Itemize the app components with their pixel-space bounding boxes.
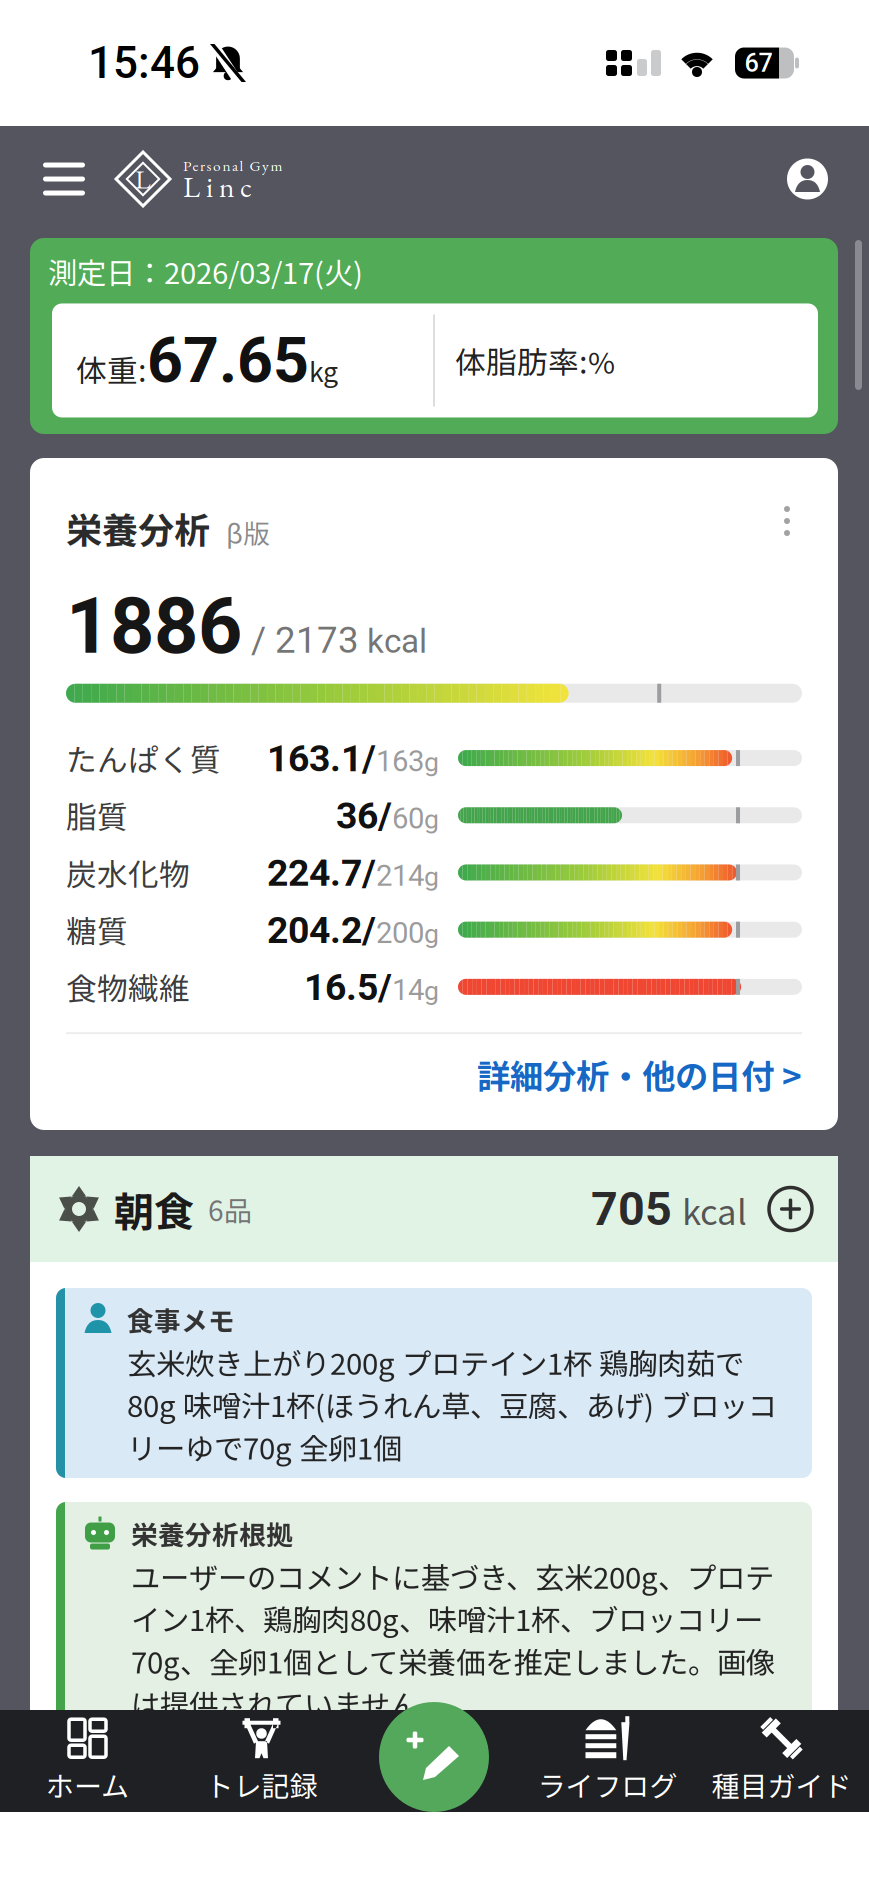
- staticText: 1886: [66, 581, 242, 672]
- staticText: 食物繊維: [66, 964, 190, 1009]
- staticText: トレ記録: [205, 1764, 317, 1805]
- staticText: L: [135, 162, 151, 196]
- staticText: %: [588, 340, 615, 382]
- button[interactable]: ホーム: [46, 1717, 129, 1805]
- button[interactable]: Menu: [42, 157, 86, 201]
- staticText: 6品: [208, 1189, 252, 1229]
- staticText: g: [424, 975, 439, 1007]
- staticText: 204.2/: [267, 908, 376, 952]
- staticText: g: [424, 747, 439, 778]
- staticText: ライフログ: [537, 1764, 677, 1805]
- staticText: 測定日：2026/03/17(火): [48, 250, 363, 292]
- staticText: 80g 味噌汁1杯(ほうれん草、豆腐、あげ) ブロッコ: [127, 1383, 777, 1426]
- staticText: たんぱく質: [66, 736, 221, 780]
- staticText: 糖質: [66, 907, 128, 952]
- button[interactable]: 詳細分析・他の日付 >: [66, 1050, 802, 1098]
- staticText: kcal: [682, 1185, 747, 1235]
- button[interactable]: 種目ガイド: [711, 1717, 851, 1805]
- staticText: g: [424, 918, 439, 949]
- staticText: 食事メモ: [127, 1300, 235, 1339]
- staticText: 67.65: [147, 324, 309, 397]
- staticText: Linc: [183, 167, 252, 206]
- staticText: ユーザーのコメントに基づき、玄米200g、プロテ: [131, 1555, 774, 1597]
- staticText: は提供されていません。: [131, 1682, 448, 1724]
- staticText: 163: [376, 744, 424, 778]
- staticText: 224.7/: [267, 851, 376, 895]
- staticText: 200: [376, 916, 424, 950]
- staticText: 705: [591, 1182, 672, 1236]
- staticText: 玄米炊き上がり200g プロテイン1杯 鶏胸肉茹で: [127, 1341, 744, 1383]
- button[interactable]: Account: [787, 158, 828, 199]
- staticText: 栄養分析根拠: [131, 1514, 293, 1553]
- staticText: イン1杯、鶏胸肉80g、味噌汁1杯、ブロッコリー: [131, 1597, 763, 1640]
- staticText: 60: [392, 801, 424, 836]
- button[interactable]: More options: [784, 458, 802, 536]
- staticText: 214: [376, 858, 424, 893]
- staticText: 36/: [336, 794, 392, 838]
- staticText: /: [242, 619, 275, 662]
- staticText: β版: [226, 513, 270, 551]
- staticText: 70g、全卵1個として栄養価を推定しました。画像: [131, 1640, 775, 1682]
- staticText: 2173: [275, 619, 359, 662]
- staticText: 体重:: [76, 346, 147, 391]
- staticText: 脂質: [66, 793, 128, 837]
- staticText: 種目ガイド: [711, 1764, 851, 1805]
- staticText: 16.5/: [304, 965, 392, 1009]
- button[interactable]: Add food: [747, 1185, 838, 1232]
- staticText: 栄養分析: [66, 502, 210, 554]
- staticText: kcal: [359, 622, 427, 661]
- staticText: g: [424, 861, 439, 892]
- staticText: 67: [744, 48, 772, 78]
- staticText: kg: [309, 351, 338, 390]
- staticText: 15:46: [88, 37, 200, 89]
- staticText: g: [424, 804, 439, 835]
- button[interactable]: トレ記録: [205, 1717, 317, 1805]
- staticText: Personal Gym: [183, 155, 282, 175]
- staticText: 163.1/: [267, 737, 376, 780]
- staticText: 炭水化物: [66, 850, 190, 894]
- staticText: 詳細分析・他の日付 >: [477, 1050, 802, 1098]
- staticText: 体脂肪率:: [455, 338, 588, 383]
- staticText: リーゆで70g 全卵1個: [127, 1426, 402, 1468]
- button[interactable]: ライフログ: [537, 1717, 677, 1805]
- button[interactable]: Personal Gym Linc: [116, 152, 293, 206]
- staticText: 14: [392, 973, 424, 1007]
- staticText: ホーム: [46, 1764, 129, 1805]
- staticText: 朝食: [114, 1180, 194, 1238]
- button[interactable]: Record meal: [379, 1702, 489, 1812]
